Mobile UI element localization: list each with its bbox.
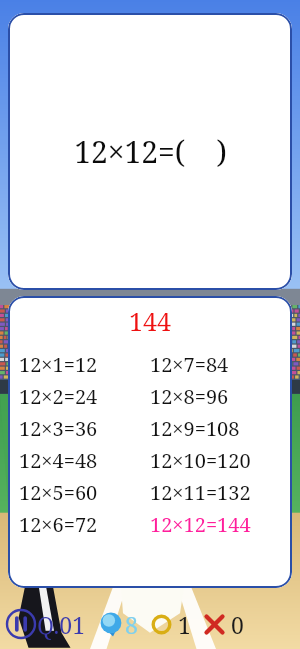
staticText: 12×12=144 <box>150 511 251 538</box>
button[interactable]: 12×12=( ) <box>8 13 292 290</box>
staticText: 12×11=132 <box>150 479 251 506</box>
staticText: 0 <box>231 609 244 640</box>
staticText: 12×2=24 <box>19 383 98 410</box>
staticText: 12×5=60 <box>19 479 98 506</box>
staticText: 12×4=48 <box>19 447 98 474</box>
staticText: 8 <box>125 609 138 640</box>
staticText: 12×6=72 <box>19 511 98 538</box>
button[interactable]: 144 <box>8 296 292 588</box>
staticText: 12×8=96 <box>150 383 229 410</box>
staticText: 12×10=120 <box>150 447 251 474</box>
staticText: 12×12=( ) <box>74 131 227 172</box>
staticText: 1 <box>178 609 191 640</box>
staticText: 12×9=108 <box>150 415 240 442</box>
button[interactable]: Pause <box>5 608 37 640</box>
staticText: 12×3=36 <box>19 415 98 442</box>
staticText: 12×7=84 <box>150 351 229 378</box>
staticText: Q.01 <box>37 609 86 640</box>
staticText: 12×1=12 <box>19 351 98 378</box>
staticText: 144 <box>129 304 171 338</box>
